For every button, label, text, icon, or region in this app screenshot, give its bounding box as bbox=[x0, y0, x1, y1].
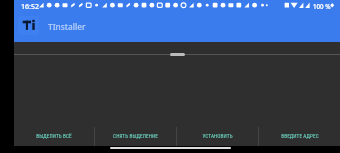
button[interactable]: ВВЕДИТЕ АДРЕС bbox=[259, 127, 340, 153]
staticText: СНЯТЬ ВЫДЕЛЕНИЕ bbox=[113, 133, 158, 139]
staticText: TInstaller bbox=[48, 21, 86, 32]
button[interactable]: УСТАНОВИТЬ bbox=[177, 127, 258, 153]
staticText: ВВЕДИТЕ АДРЕС bbox=[281, 133, 319, 139]
staticText: 16:52 bbox=[21, 2, 39, 12]
button[interactable]: App logo bbox=[18, 16, 39, 35]
staticText: 100 % bbox=[313, 2, 331, 10]
button[interactable]: СНЯТЬ ВЫДЕЛЕНИЕ bbox=[95, 127, 176, 153]
staticText: УСТАНОВИТЬ bbox=[202, 133, 233, 139]
staticText: ВЫДЕЛИТЬ ВСЁ bbox=[36, 133, 72, 139]
button[interactable]: ВЫДЕЛИТЬ ВСЁ bbox=[14, 127, 94, 153]
